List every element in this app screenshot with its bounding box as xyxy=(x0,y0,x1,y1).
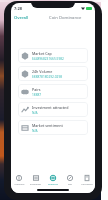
staticText: Market sentiment xyxy=(32,123,63,128)
staticText: 18887 xyxy=(32,93,42,97)
button[interactable]: Market sentiment xyxy=(18,120,88,135)
button[interactable]: Fee xyxy=(61,173,78,187)
staticText: Overall xyxy=(14,15,29,21)
staticText: N/A xyxy=(32,129,38,133)
staticText: Calculator xyxy=(81,182,93,185)
button[interactable]: Overall xyxy=(12,14,31,22)
staticText: $448968231665.5982 xyxy=(32,57,64,61)
staticText: Fee xyxy=(68,182,72,185)
staticText: $88878180292.0298 xyxy=(32,75,63,79)
button[interactable]: Coin Dominance xyxy=(47,14,84,22)
staticText: 24h Volume xyxy=(32,69,53,74)
button[interactable]: Investment attracted xyxy=(18,102,88,117)
other: Fee xyxy=(67,175,73,181)
button[interactable]: Statistics xyxy=(44,173,61,187)
staticText: Investment attracted xyxy=(32,105,69,110)
staticText: N/A xyxy=(32,111,38,115)
button[interactable]: Market Cap xyxy=(18,48,88,63)
other: Statistics xyxy=(50,175,56,181)
staticText: Pairs xyxy=(32,87,41,92)
staticText: Exchange xyxy=(30,182,41,185)
button[interactable]: 24h Volume xyxy=(18,66,88,81)
button[interactable]: Pairs xyxy=(18,84,88,99)
other: Calculator xyxy=(84,175,90,181)
button[interactable]: Exchange xyxy=(27,173,44,187)
staticText: 7:28 xyxy=(14,6,22,11)
button[interactable]: Currency xyxy=(11,173,27,187)
staticText: Currency xyxy=(14,182,25,185)
staticText: Coin Dominance xyxy=(49,15,82,21)
button[interactable]: Calculator xyxy=(78,173,95,187)
staticText: Statistics xyxy=(48,182,58,185)
staticText: Market Cap xyxy=(32,51,52,56)
other: Exchange xyxy=(33,175,39,181)
other: Currency xyxy=(16,175,22,181)
